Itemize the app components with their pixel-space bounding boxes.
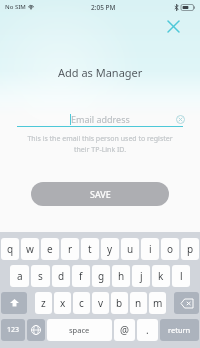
staticText: c <box>79 296 84 310</box>
button[interactable]: h <box>112 265 130 287</box>
staticText: l <box>180 269 183 283</box>
button[interactable]: f <box>72 265 90 287</box>
staticText: h <box>118 269 125 283</box>
button[interactable]: p <box>181 238 199 260</box>
button[interactable]: SAVE <box>31 182 169 206</box>
staticText: t <box>88 242 92 256</box>
button[interactable]: e <box>41 238 59 260</box>
staticText: a <box>17 269 23 283</box>
staticText: o <box>167 242 174 256</box>
button[interactable]: space <box>47 319 112 341</box>
button[interactable]: d <box>52 265 70 287</box>
button[interactable]: t <box>81 238 99 260</box>
button[interactable]: Email address <box>18 110 182 128</box>
button[interactable]: x <box>54 292 71 314</box>
button[interactable]: q <box>1 238 19 260</box>
staticText: g <box>98 269 105 283</box>
button[interactable]: o <box>161 238 179 260</box>
button[interactable]: k <box>152 265 170 287</box>
staticText: m <box>153 296 163 310</box>
button[interactable]: return <box>160 319 199 341</box>
staticText: j <box>140 269 143 283</box>
staticText: y <box>107 242 113 256</box>
staticText: 123 <box>7 325 20 335</box>
button[interactable]: Clear text <box>172 111 188 127</box>
button[interactable]: Change keyboard <box>27 319 45 341</box>
staticText: p <box>187 242 194 256</box>
staticText: k <box>158 269 164 283</box>
staticText: n <box>135 296 142 310</box>
staticText: This is the email this person used to re… <box>20 134 180 154</box>
button[interactable]: v <box>92 292 109 314</box>
staticText: d <box>58 269 65 283</box>
button[interactable]: n <box>130 292 147 314</box>
button[interactable]: l <box>172 265 190 287</box>
button[interactable]: . <box>137 319 158 341</box>
button[interactable]: u <box>121 238 139 260</box>
button[interactable]: c <box>73 292 90 314</box>
button[interactable]: y <box>101 238 119 260</box>
staticText: r <box>68 242 73 256</box>
button[interactable]: 123 <box>1 319 25 341</box>
button[interactable]: i <box>141 238 159 260</box>
staticText: s <box>38 269 43 283</box>
staticText: w <box>26 242 34 256</box>
staticText: SAVE <box>90 188 111 200</box>
button[interactable]: Shift <box>1 292 27 314</box>
staticText: i <box>149 242 152 256</box>
staticText: No SIM <box>5 3 26 11</box>
button[interactable]: @ <box>114 319 135 341</box>
staticText: q <box>7 242 14 256</box>
button[interactable]: m <box>149 292 166 314</box>
staticText: u <box>127 242 134 256</box>
button[interactable]: j <box>132 265 150 287</box>
staticText: 2:05 PM <box>91 3 116 12</box>
staticText: x <box>60 296 66 310</box>
button[interactable]: z <box>35 292 52 314</box>
button[interactable]: b <box>111 292 128 314</box>
button[interactable]: a <box>10 265 29 287</box>
staticText: return <box>168 325 191 335</box>
button[interactable]: Close <box>161 14 185 38</box>
staticText: z <box>41 296 46 310</box>
staticText: v <box>98 296 104 310</box>
staticText: e <box>47 242 53 256</box>
button[interactable]: Backspace <box>174 292 199 314</box>
button[interactable]: r <box>61 238 79 260</box>
staticText: space <box>69 325 90 335</box>
staticText: @ <box>120 323 129 337</box>
button[interactable]: g <box>92 265 110 287</box>
staticText: . <box>146 323 149 337</box>
staticText: Add as Manager <box>58 65 143 80</box>
staticText: b <box>116 296 123 310</box>
button[interactable]: w <box>21 238 39 260</box>
button[interactable]: s <box>31 265 50 287</box>
staticText: Email address <box>71 113 130 125</box>
staticText: f <box>79 269 83 283</box>
